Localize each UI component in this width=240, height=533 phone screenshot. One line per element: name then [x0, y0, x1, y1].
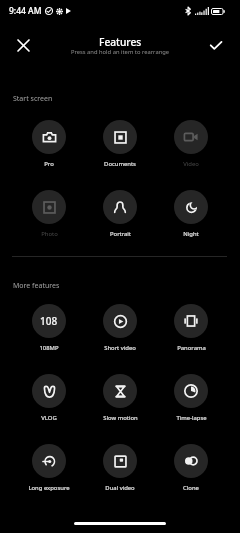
- staticText: Video: [183, 160, 199, 168]
- staticText: More features: [13, 281, 60, 291]
- button[interactable]: Night: [156, 190, 226, 240]
- button[interactable]: Time-lapse: [156, 374, 226, 424]
- staticText: Slow motion: [103, 414, 138, 422]
- button[interactable]: Short video: [85, 304, 155, 354]
- staticText: Panorama: [177, 344, 206, 352]
- button[interactable]: 108: [14, 304, 84, 354]
- staticText: Clone: [183, 484, 199, 492]
- button[interactable]: Long exposure: [14, 444, 84, 494]
- button[interactable]: Slow motion: [85, 374, 155, 424]
- staticText: Short video: [104, 344, 136, 352]
- staticText: Features: [99, 35, 142, 49]
- staticText: Pro: [44, 160, 54, 168]
- staticText: VLOG: [41, 414, 57, 422]
- button[interactable]: Done: [200, 30, 231, 61]
- button[interactable]: Portrait: [85, 190, 155, 240]
- button[interactable]: Documents: [85, 120, 155, 170]
- staticText: Long exposure: [28, 484, 70, 492]
- staticText: Documents: [104, 160, 136, 168]
- button[interactable]: Photo: [14, 190, 84, 240]
- button[interactable]: Panorama: [156, 304, 226, 354]
- staticText: Start screen: [13, 94, 53, 104]
- button[interactable]: Clone: [156, 444, 226, 494]
- staticText: Time-lapse: [176, 414, 207, 422]
- staticText: Portrait: [110, 230, 131, 238]
- button[interactable]: VLOG: [14, 374, 84, 424]
- staticText: Photo: [41, 230, 58, 238]
- staticText: Press and hold an item to rearrange: [71, 48, 170, 56]
- button[interactable]: Video: [156, 120, 226, 170]
- staticText: Dual video: [105, 484, 135, 492]
- staticText: Night: [183, 230, 199, 238]
- button[interactable]: Dual video: [85, 444, 155, 494]
- staticText: 9:44 AM: [9, 5, 42, 17]
- button[interactable]: Close: [8, 30, 39, 61]
- staticText: 108: [40, 314, 58, 328]
- staticText: 108MP: [39, 344, 59, 352]
- button[interactable]: Pro: [14, 120, 84, 170]
